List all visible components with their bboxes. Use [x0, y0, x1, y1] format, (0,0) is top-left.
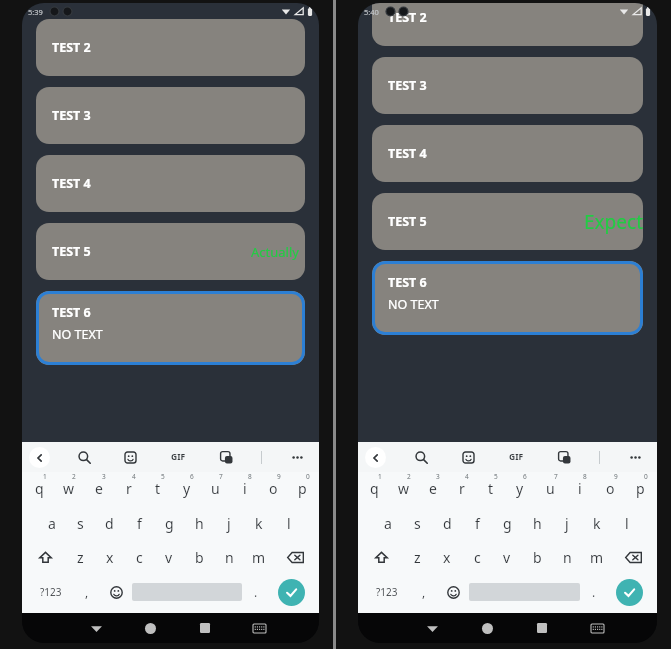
button[interactable]: a: [373, 506, 402, 540]
button[interactable]: TEST 4: [36, 155, 305, 212]
button[interactable]: x: [95, 540, 124, 574]
button[interactable]: TEST 2: [36, 19, 305, 76]
button[interactable]: g: [492, 506, 522, 540]
button[interactable]: Emoji: [101, 574, 132, 610]
button[interactable]: Search: [409, 445, 433, 469]
button[interactable]: x: [432, 540, 462, 574]
button[interactable]: z: [402, 540, 432, 574]
staticText: 5:40: [364, 7, 379, 17]
button[interactable]: GIF: [503, 445, 529, 469]
button[interactable]: TEST 3: [36, 87, 305, 144]
button[interactable]: TEST 4: [372, 125, 643, 182]
button[interactable]: 4: [114, 472, 143, 506]
button[interactable]: h: [522, 506, 552, 540]
button[interactable]: TEST 6: [372, 261, 643, 335]
button[interactable]: 1: [360, 472, 389, 506]
button[interactable]: Home: [137, 615, 163, 641]
button[interactable]: .: [580, 574, 608, 610]
button[interactable]: f: [462, 506, 492, 540]
button[interactable]: More options: [623, 445, 647, 469]
button[interactable]: Search: [72, 445, 96, 469]
button[interactable]: 3: [418, 472, 447, 506]
button[interactable]: 1: [24, 472, 54, 506]
button[interactable]: Back: [419, 615, 445, 641]
button[interactable]: Recent apps: [529, 615, 555, 641]
button[interactable]: 3: [84, 472, 114, 506]
button[interactable]: 5: [143, 472, 172, 506]
button[interactable]: 0: [625, 472, 655, 506]
button[interactable]: Enter: [616, 579, 643, 606]
button[interactable]: TEST 5: [36, 223, 305, 280]
button[interactable]: Backspace: [274, 540, 316, 574]
button[interactable]: ?123: [28, 574, 73, 610]
button[interactable]: j: [552, 506, 582, 540]
button[interactable]: h: [184, 506, 214, 540]
button[interactable]: n: [214, 540, 244, 574]
button[interactable]: 8: [230, 472, 259, 506]
button[interactable]: TEST 2: [372, 3, 643, 46]
button[interactable]: 9: [259, 472, 288, 506]
button[interactable]: g: [154, 506, 184, 540]
button[interactable]: d: [95, 506, 124, 540]
button[interactable]: 5: [476, 472, 505, 506]
button[interactable]: Translate: [552, 445, 576, 469]
button[interactable]: 7: [535, 472, 565, 506]
button[interactable]: c: [462, 540, 492, 574]
button[interactable]: 2: [389, 472, 418, 506]
button[interactable]: v: [492, 540, 522, 574]
button[interactable]: Stickers: [456, 445, 480, 469]
button[interactable]: z: [66, 540, 95, 574]
staticText: n: [563, 548, 572, 567]
button[interactable]: TEST 3: [372, 57, 643, 114]
button[interactable]: n: [552, 540, 582, 574]
button[interactable]: TEST 6: [36, 291, 305, 365]
button[interactable]: 8: [565, 472, 595, 506]
button[interactable]: 7: [201, 472, 230, 506]
button[interactable]: s: [66, 506, 95, 540]
button[interactable]: b: [522, 540, 552, 574]
button[interactable]: ,: [73, 574, 101, 610]
button[interactable]: b: [184, 540, 214, 574]
button[interactable]: TEST 5: [372, 193, 643, 250]
button[interactable]: ?123: [364, 574, 410, 610]
button[interactable]: c: [124, 540, 154, 574]
button[interactable]: 6: [505, 472, 535, 506]
button[interactable]: More options: [285, 445, 309, 469]
button[interactable]: m: [582, 540, 612, 574]
button[interactable]: Back: [83, 615, 109, 641]
button[interactable]: j: [214, 506, 244, 540]
button[interactable]: Switch keyboard: [246, 615, 272, 641]
button[interactable]: Back: [365, 447, 386, 468]
button[interactable]: Emoji: [438, 574, 469, 610]
button[interactable]: Stickers: [118, 445, 142, 469]
button[interactable]: d: [432, 506, 462, 540]
button[interactable]: Enter: [278, 579, 305, 606]
button[interactable]: Switch keyboard: [584, 615, 610, 641]
button[interactable]: s: [402, 506, 432, 540]
button[interactable]: GIF: [165, 445, 191, 469]
button[interactable]: m: [244, 540, 274, 574]
button[interactable]: k: [244, 506, 274, 540]
button[interactable]: l: [612, 506, 642, 540]
button[interactable]: Recent apps: [192, 615, 218, 641]
button[interactable]: f: [124, 506, 154, 540]
button[interactable]: Shift: [25, 540, 66, 574]
button[interactable]: ,: [410, 574, 438, 610]
button[interactable]: v: [154, 540, 184, 574]
button[interactable]: l: [274, 506, 304, 540]
button[interactable]: k: [582, 506, 612, 540]
button[interactable]: 2: [54, 472, 84, 506]
button[interactable]: a: [37, 506, 66, 540]
button[interactable]: 4: [447, 472, 476, 506]
button[interactable]: Shift: [361, 540, 402, 574]
button[interactable]: Back: [29, 447, 50, 468]
button[interactable]: Translate: [214, 445, 238, 469]
button[interactable]: Home: [474, 615, 500, 641]
button[interactable]: 6: [172, 472, 201, 506]
button[interactable]: 0: [288, 472, 317, 506]
button[interactable]: 9: [595, 472, 625, 506]
button[interactable]: Backspace: [612, 540, 654, 574]
button[interactable]: .: [242, 574, 270, 610]
